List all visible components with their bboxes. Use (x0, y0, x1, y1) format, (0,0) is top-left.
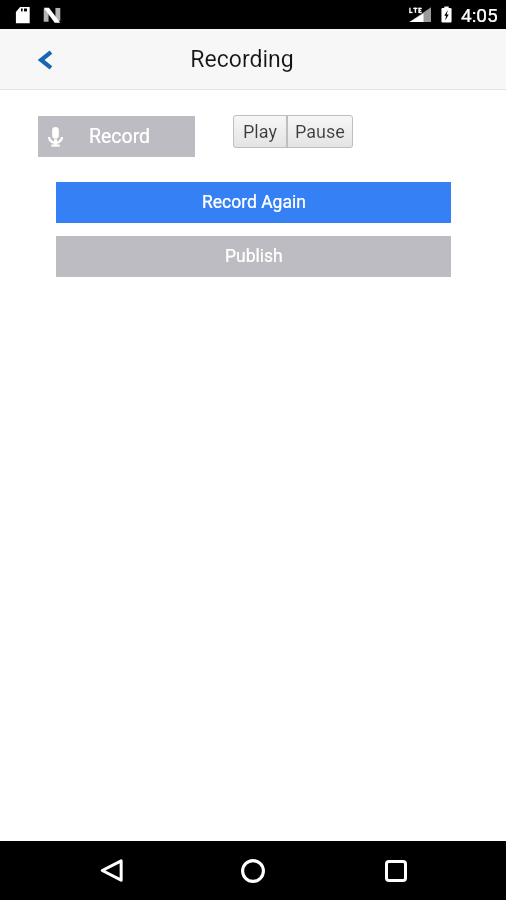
button[interactable]: Play (233, 115, 287, 148)
staticText: Pause (295, 121, 345, 142)
staticText: 4:05 (461, 4, 498, 26)
staticText: Play (243, 121, 277, 142)
staticText: Record Again (202, 192, 306, 213)
staticText: Publish (225, 246, 283, 267)
button[interactable]: Record Again (56, 182, 451, 223)
button[interactable]: Pause (287, 115, 353, 148)
button[interactable]: Back (10, 29, 80, 90)
staticText: Recording (190, 46, 294, 73)
button[interactable]: Home (221, 841, 285, 900)
button[interactable]: Publish (56, 236, 451, 277)
button[interactable]: Record (38, 116, 195, 157)
button[interactable]: Recent apps (364, 841, 428, 900)
staticText: Record (89, 125, 151, 148)
button[interactable]: Back (79, 841, 143, 900)
